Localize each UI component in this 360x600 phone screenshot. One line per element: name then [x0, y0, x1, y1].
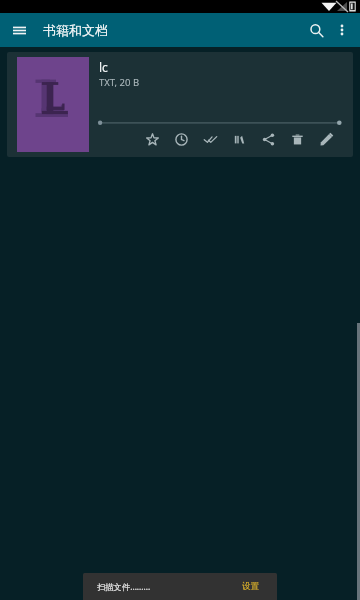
staticText: lc	[99, 59, 108, 75]
button[interactable]: Mark as read	[196, 125, 225, 154]
button[interactable]: More options	[328, 13, 356, 47]
button[interactable]: Open navigation drawer	[0, 13, 38, 47]
button[interactable]: Share	[254, 125, 283, 154]
button[interactable]: lc	[7, 52, 353, 157]
button[interactable]: Library	[225, 125, 254, 154]
button[interactable]: Delete	[283, 125, 312, 154]
staticText: 扫描文件.........	[97, 581, 151, 592]
button[interactable]: 设置	[240, 578, 262, 595]
staticText: 书籍和文档	[43, 22, 108, 38]
staticText: 设置	[242, 581, 260, 592]
staticText: TXT, 20 B	[99, 76, 140, 89]
button[interactable]: Edit	[312, 125, 341, 154]
button[interactable]: Recent	[167, 125, 196, 154]
button[interactable]: Search	[302, 13, 331, 47]
button[interactable]: Favorite	[138, 125, 167, 154]
